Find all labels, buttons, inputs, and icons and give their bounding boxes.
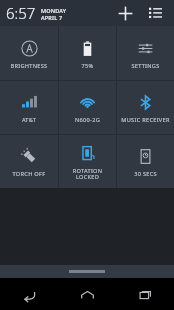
staticText: 30 SECS	[117, 170, 174, 178]
button[interactable]: Back	[0, 278, 58, 310]
staticText: ROTATION LOCKED	[59, 167, 116, 181]
staticText: N600-2G	[59, 116, 116, 124]
staticText: SETTINGS	[117, 62, 174, 70]
button[interactable]: TORCH OFF	[0, 135, 58, 188]
staticText: 75%	[59, 62, 116, 70]
button[interactable]: ROTATION LOCKED	[59, 135, 116, 188]
staticText: AT&T	[0, 116, 58, 124]
button[interactable]: Close panel	[0, 265, 174, 278]
button[interactable]: 75%	[59, 26, 116, 80]
button[interactable]: Home	[58, 278, 116, 310]
button[interactable]: Recents	[116, 278, 174, 310]
button[interactable]: MUSIC RECEIVER	[117, 81, 174, 134]
staticText: APRIL 7	[41, 14, 63, 21]
button[interactable]: 30 SECS	[117, 135, 174, 188]
button[interactable]: Add	[112, 0, 138, 26]
button[interactable]: N600-2G	[59, 81, 116, 134]
staticText: 6:57	[6, 3, 36, 23]
button[interactable]: BRIGHTNESS	[0, 26, 58, 80]
staticText: BRIGHTNESS	[0, 62, 58, 70]
staticText: MONDAY	[41, 7, 67, 14]
button[interactable]: SETTINGS	[117, 26, 174, 80]
button[interactable]: Quick settings list	[142, 0, 168, 26]
button[interactable]: AT&T	[0, 81, 58, 134]
staticText: MUSIC RECEIVER	[117, 116, 174, 124]
staticText: TORCH OFF	[0, 170, 58, 178]
